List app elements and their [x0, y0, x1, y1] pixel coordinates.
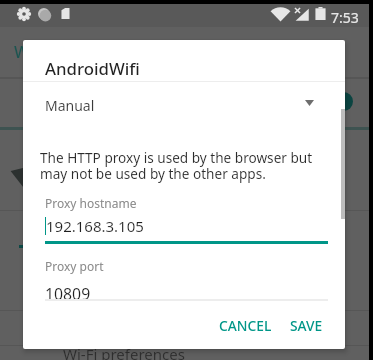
staticText: 192.168.3.105 — [46, 216, 144, 236]
button[interactable]: Proxy mode: Manual — [23, 88, 345, 122]
staticText: Wi-Fi — [14, 40, 53, 62]
staticText: AndroidWifi — [45, 57, 140, 80]
button[interactable]: CANCEL — [211, 308, 280, 343]
staticText: The HTTP proxy is used by the browser bu… — [40, 148, 326, 183]
other: Settings — [17, 7, 31, 21]
staticText: 7:53 — [331, 8, 359, 27]
button[interactable]: SAVE — [282, 308, 331, 343]
staticText: Wi-Fi preferences — [63, 344, 185, 360]
staticText: SAVE — [290, 316, 323, 335]
staticText: Proxy hostname — [45, 195, 137, 211]
staticText: Proxy port — [45, 258, 104, 274]
staticText: CANCEL — [219, 316, 272, 335]
staticText: Manual — [45, 96, 95, 115]
staticText: 10809 — [45, 283, 91, 305]
